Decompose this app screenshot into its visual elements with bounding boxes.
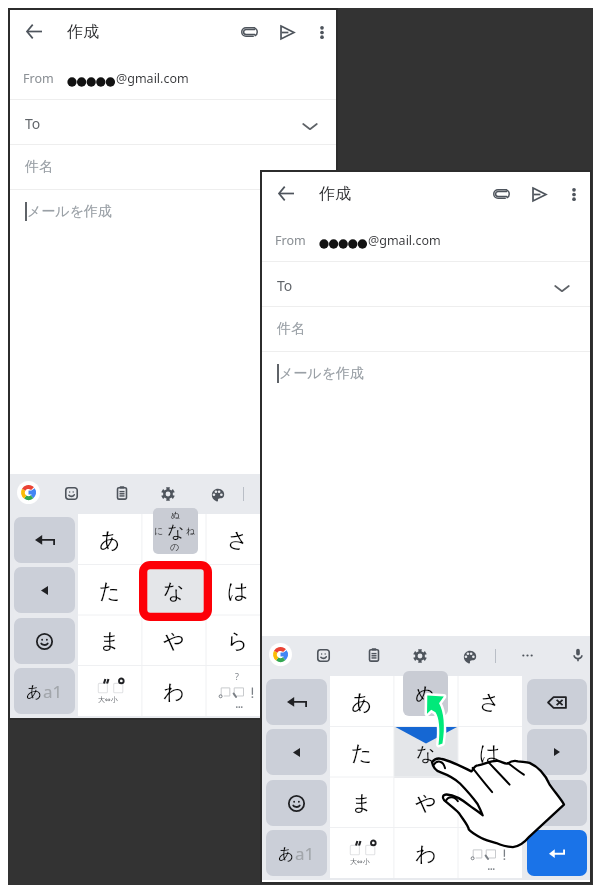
button[interactable]: Move right	[527, 729, 587, 775]
staticText: メールを作成	[27, 203, 112, 221]
button[interactable]: Settings	[161, 487, 175, 501]
staticText: に	[154, 525, 164, 536]
button[interactable]: Move left	[14, 567, 75, 613]
button[interactable]: あ	[78, 514, 142, 565]
button[interactable]: Switch input mode	[14, 668, 75, 714]
button[interactable]: Themes	[211, 488, 225, 502]
button[interactable]: Clipboard	[367, 648, 381, 662]
button[interactable]: メールを作成	[262, 352, 590, 632]
staticText: 大⇔小	[98, 695, 118, 704]
button[interactable]: Dakuten	[78, 666, 142, 717]
staticText: な	[167, 521, 185, 542]
button[interactable]: メールを作成	[10, 190, 336, 470]
button[interactable]: Themes	[463, 650, 477, 664]
button[interactable]: Enter	[275, 668, 335, 714]
button[interactable]: ら	[458, 777, 522, 828]
button[interactable]: わ	[394, 828, 458, 879]
button[interactable]: や	[394, 777, 458, 828]
staticText: ぬ	[171, 509, 181, 520]
button[interactable]: や	[142, 615, 206, 666]
button[interactable]: Emoji	[266, 780, 327, 826]
button[interactable]: Back	[26, 24, 42, 39]
button[interactable]: は	[206, 565, 270, 616]
button[interactable]: Undo	[266, 679, 327, 725]
staticText: は	[227, 578, 249, 604]
staticText: や	[415, 790, 437, 816]
button[interactable]: ま	[330, 777, 394, 828]
button[interactable]: More options	[320, 26, 324, 39]
button[interactable]: To	[10, 100, 336, 144]
button[interactable]: ま	[78, 615, 142, 666]
button[interactable]: Send	[532, 187, 547, 202]
button[interactable]: わ	[142, 666, 206, 717]
button[interactable]: Enter	[527, 830, 587, 876]
button[interactable]: From	[10, 56, 336, 99]
staticText: ら	[227, 628, 249, 654]
button[interactable]: Back	[278, 186, 294, 201]
staticText: た	[99, 578, 121, 604]
button[interactable]: Undo	[14, 517, 75, 563]
button[interactable]: Switch input mode	[266, 830, 327, 876]
staticText: あ	[278, 844, 295, 864]
button[interactable]: さ	[206, 514, 270, 565]
button[interactable]: あ	[330, 676, 394, 727]
button[interactable]: More options	[572, 188, 576, 201]
button[interactable]: 件名	[10, 145, 336, 189]
button[interactable]: Settings	[413, 649, 427, 663]
staticText: な	[163, 578, 185, 604]
button[interactable]: Send	[280, 25, 295, 40]
staticText: ま	[351, 790, 373, 816]
button[interactable]: Attach file	[241, 27, 258, 37]
button[interactable]: Stickers	[65, 487, 78, 500]
button[interactable]: ら	[206, 615, 270, 666]
button[interactable]: Move left	[266, 729, 327, 775]
staticText: 件名	[277, 320, 305, 338]
staticText: @gmail.com	[368, 232, 441, 249]
staticText: ?	[487, 832, 491, 844]
staticText: わ	[415, 841, 437, 867]
button[interactable]: Punctuation	[458, 828, 522, 879]
staticText: 大⇔小	[350, 857, 370, 866]
staticText: メールを作成	[279, 365, 364, 383]
button[interactable]: さ	[458, 676, 522, 727]
staticText: To	[25, 114, 41, 133]
button[interactable]: Google	[17, 481, 40, 504]
staticText: や	[163, 628, 185, 654]
staticText: な	[416, 742, 436, 766]
staticText: a1	[43, 680, 63, 703]
button[interactable]: Punctuation	[206, 666, 270, 717]
button[interactable]: 件名	[262, 307, 590, 351]
button[interactable]: Backspace	[527, 679, 587, 725]
staticText: ぬ	[415, 681, 436, 706]
staticText: わ	[163, 679, 185, 705]
staticText: 作成	[67, 22, 99, 42]
button[interactable]: Stickers	[317, 649, 330, 662]
button[interactable]: Voice input	[571, 648, 585, 662]
staticText: あ	[26, 682, 43, 702]
staticText: To	[277, 276, 293, 295]
staticText: は	[479, 740, 501, 766]
button[interactable]: た	[330, 727, 394, 778]
button[interactable]: More tools	[521, 649, 534, 662]
button[interactable]: Space	[527, 780, 587, 826]
staticText: あ	[99, 527, 121, 553]
staticText: 件名	[25, 158, 53, 176]
button[interactable]: Clipboard	[115, 486, 129, 500]
button[interactable]: Emoji	[14, 618, 75, 664]
button[interactable]: Space	[275, 618, 335, 664]
button[interactable]: た	[78, 565, 142, 616]
staticText: あ	[351, 689, 373, 715]
button[interactable]: Dakuten	[330, 828, 394, 879]
button[interactable]: From	[262, 218, 590, 261]
staticText: From	[23, 70, 54, 87]
button[interactable]: Attach file	[493, 189, 510, 199]
button[interactable]: To	[262, 262, 590, 306]
staticText: さ	[479, 689, 501, 715]
button[interactable]: Google	[269, 643, 292, 666]
button[interactable]: は	[458, 727, 522, 778]
staticText: @gmail.com	[116, 70, 189, 87]
